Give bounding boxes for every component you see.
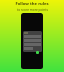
staticText: to score more points bbox=[17, 8, 48, 12]
staticText: Follow the rules bbox=[15, 1, 49, 7]
button[interactable] bbox=[23, 31, 42, 52]
button[interactable]: Send bbox=[36, 51, 39, 54]
